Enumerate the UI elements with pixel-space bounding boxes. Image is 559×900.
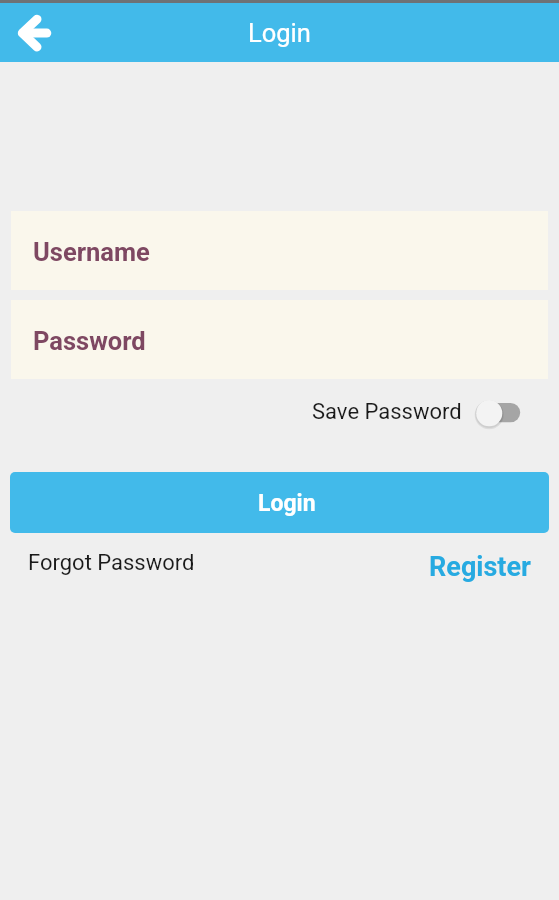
button[interactable]: Forgot Password xyxy=(28,550,195,576)
staticText: Forgot Password xyxy=(28,550,195,576)
staticText: Username xyxy=(33,237,150,267)
staticText: Password xyxy=(33,326,146,356)
staticText: Login xyxy=(258,490,316,517)
button[interactable]: Username xyxy=(11,211,548,290)
button[interactable]: Save Password toggle xyxy=(473,396,525,432)
button[interactable]: Save Password xyxy=(312,399,462,425)
button[interactable]: Back xyxy=(6,7,62,59)
staticText: Login xyxy=(248,18,311,48)
staticText: Register xyxy=(429,551,531,583)
staticText: Save Password xyxy=(312,399,462,425)
button[interactable]: Login xyxy=(10,472,549,533)
button[interactable]: Password xyxy=(11,300,548,379)
button[interactable]: Register xyxy=(429,551,531,583)
